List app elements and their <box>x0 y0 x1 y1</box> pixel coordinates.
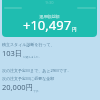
staticText: 20,000円 <box>2 82 33 92</box>
staticText: 積立スタイル診断を行って、 <box>2 42 55 47</box>
button[interactable]: 9:30 <box>2 0 97 37</box>
staticText: +10,497 <box>23 16 72 34</box>
staticText: です。 <box>33 89 41 92</box>
staticText: 次の注文予定日に必要な金額 <box>2 76 55 81</box>
staticText: 103日 <box>2 48 23 58</box>
staticText: 9:30 <box>2 0 97 5</box>
staticText: 円 <box>72 27 77 33</box>
staticText: 次の注文予定日まで、あと29日です。 <box>2 68 72 73</box>
staticText: が経ちました。 <box>23 55 42 58</box>
staticText: 運用収益額 <box>2 14 97 19</box>
